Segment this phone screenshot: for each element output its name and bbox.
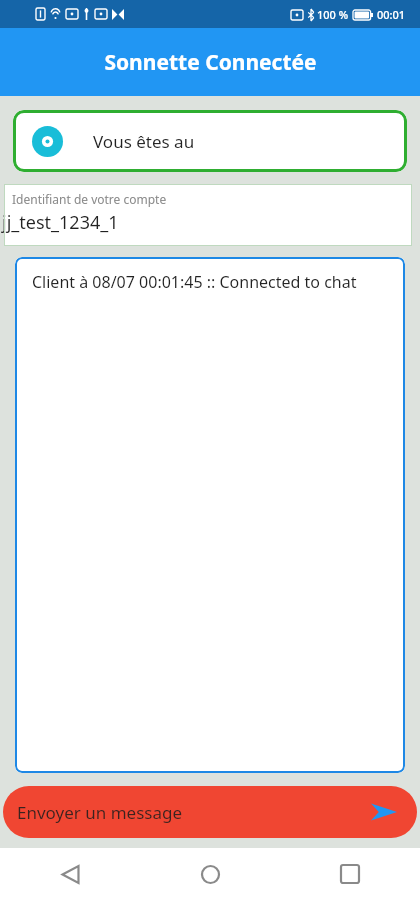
staticText: 00:01 [377,7,406,22]
button[interactable]: Vous êtes au [13,110,407,172]
button[interactable]: Identifiant de votre compte [4,184,412,246]
button[interactable]: Home [140,848,280,900]
button[interactable]: Envoyer un message [3,786,417,838]
staticText: Sonnette Connectée [104,48,317,77]
button[interactable]: Send [367,795,401,829]
button[interactable]: Recent apps [280,848,420,900]
staticText: Envoyer un message [17,801,183,824]
staticText: Vous êtes au [93,130,195,153]
staticText: jj_test_1234_1 [2,210,119,235]
button[interactable]: Client à 08/07 00:01:45 :: Connected to … [15,257,405,773]
button[interactable]: Back [0,848,140,900]
staticText: Client à 08/07 00:01:45 :: Connected to … [32,271,357,293]
staticText: 100 % [317,7,349,22]
staticText: Identifiant de votre compte [12,191,167,207]
